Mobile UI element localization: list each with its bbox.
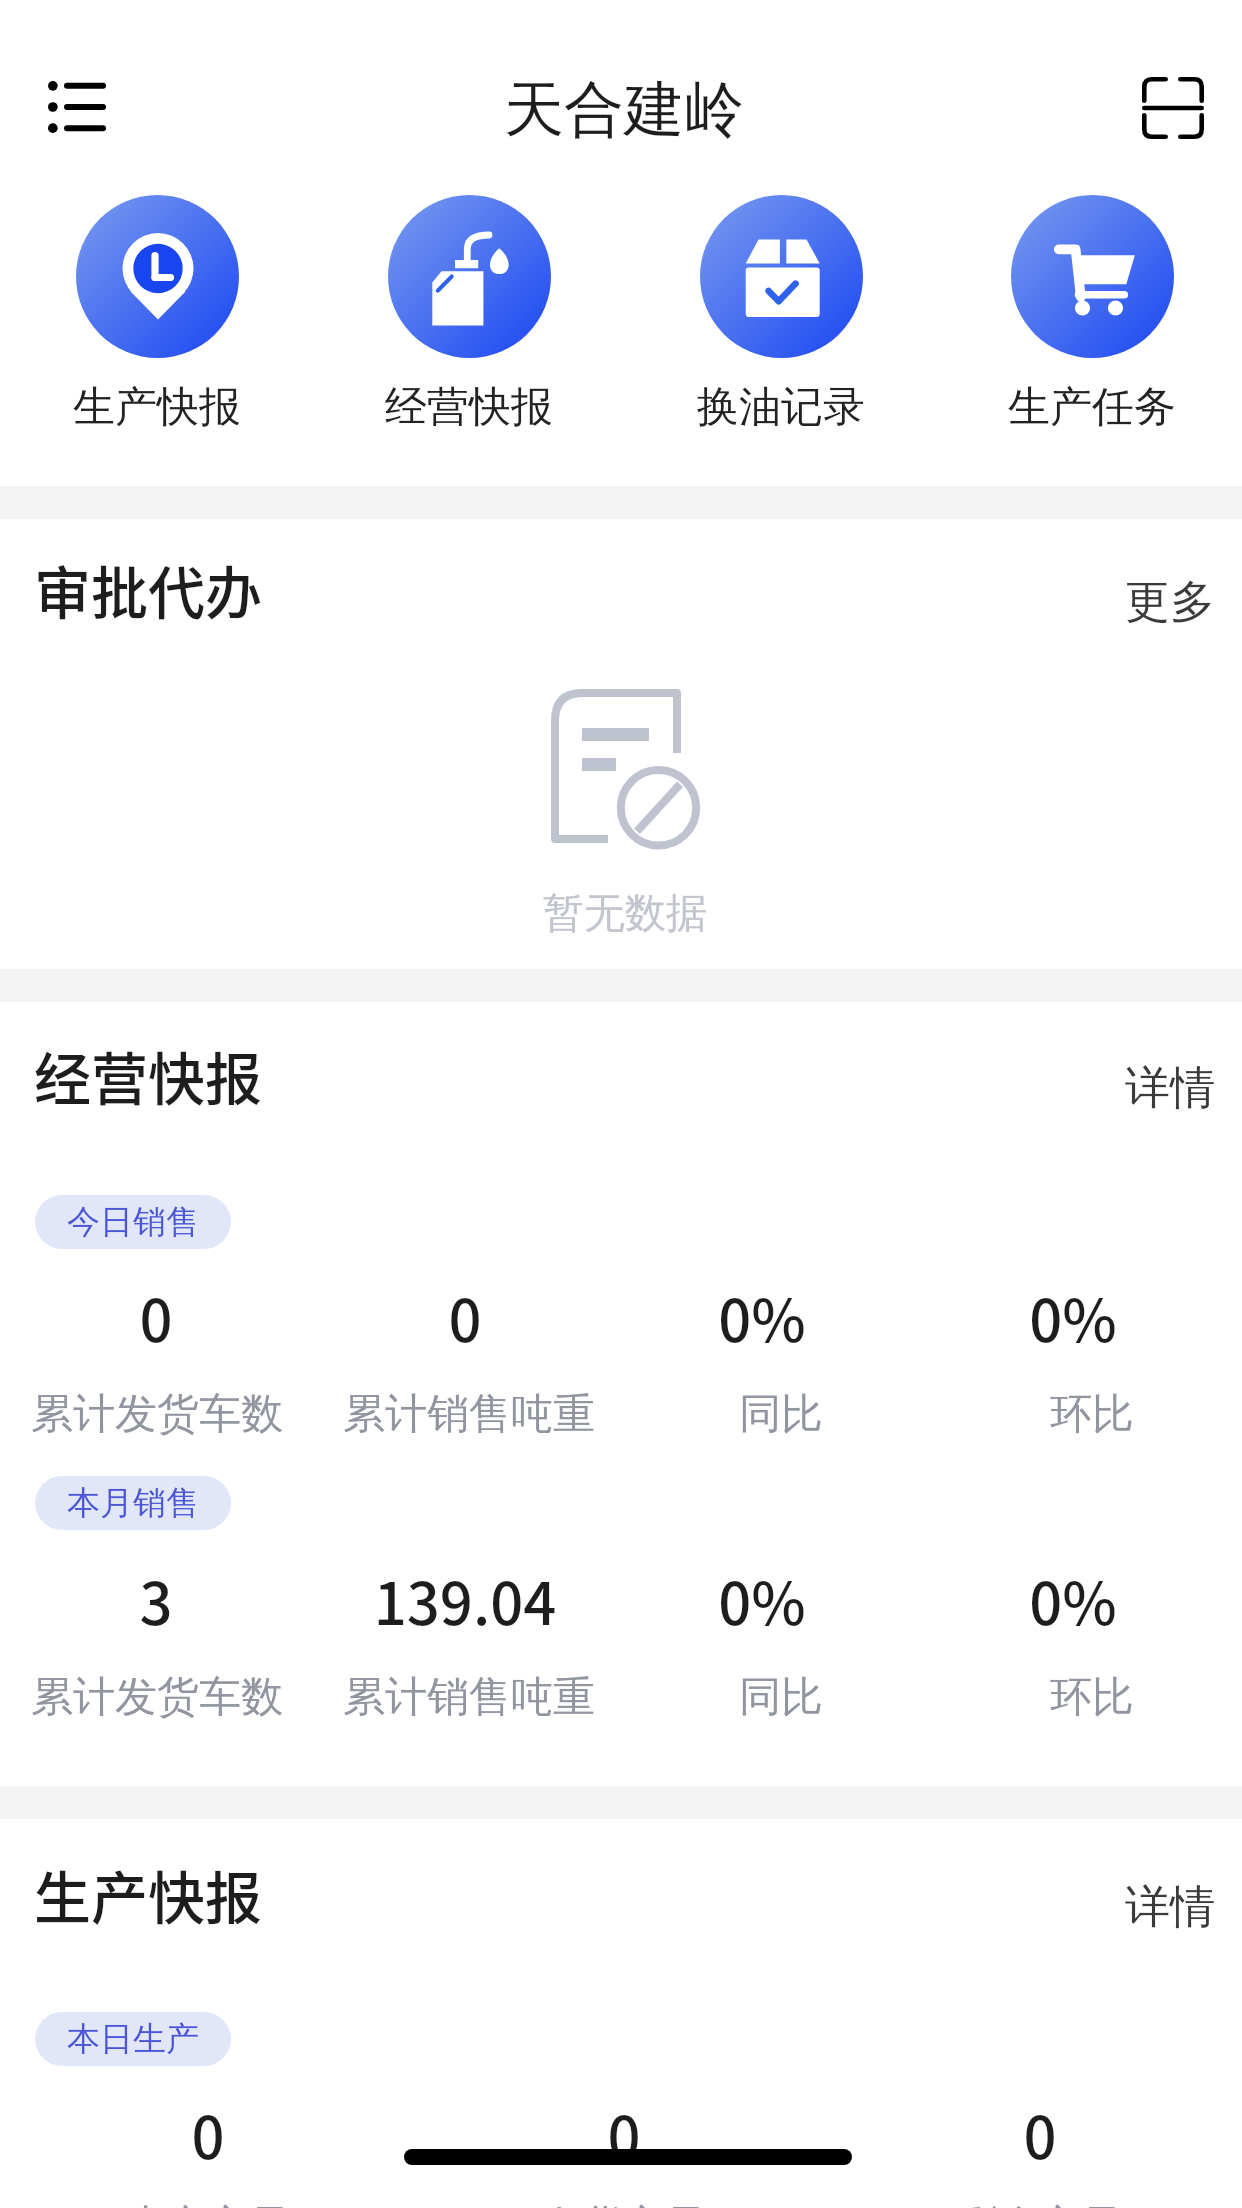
staticText: 3 — [1, 1558, 311, 1642]
staticText: 天合建岭 — [504, 72, 744, 148]
staticText: 详情 — [1125, 1060, 1215, 1117]
button[interactable]: Scan — [1118, 53, 1228, 163]
staticText: 生产快报 — [2, 381, 312, 434]
button[interactable]: 生产任务 — [937, 180, 1242, 450]
staticText: 审批代办 — [34, 548, 262, 631]
staticText: 生产快报 — [34, 1853, 262, 1936]
button[interactable]: 今日销售 — [35, 1195, 231, 1249]
staticText: 0 — [1, 1275, 311, 1359]
button[interactable]: Menu — [22, 52, 132, 162]
staticText: 本月销售 — [67, 1482, 199, 1524]
button[interactable]: 本月销售 — [35, 1476, 231, 1530]
staticText: 0% — [918, 1275, 1228, 1359]
staticText: 同比 — [626, 1671, 936, 1724]
staticText: 更多 — [1125, 574, 1215, 631]
staticText: 今日销售 — [67, 1201, 199, 1243]
button[interactable]: 生产快报 — [2, 180, 312, 450]
staticText: 累计发货车数 — [2, 1388, 312, 1441]
staticText: 0 — [8, 2092, 408, 2176]
staticText: 发货方量 — [424, 2200, 824, 2208]
staticText: 0 — [840, 2092, 1240, 2176]
staticText: 累计销售吨重 — [314, 1671, 624, 1724]
button[interactable]: 经营快报 — [314, 180, 624, 450]
button[interactable]: 本日生产 — [35, 2012, 231, 2066]
staticText: 139.04 — [310, 1558, 620, 1642]
staticText: 剩余方量 — [840, 2200, 1240, 2208]
staticText: 0 — [310, 1275, 620, 1359]
staticText: 换油记录 — [626, 381, 936, 434]
staticText: 经营快报 — [314, 381, 624, 434]
staticText: 0% — [607, 1275, 917, 1359]
staticText: 0% — [918, 1558, 1228, 1642]
staticText: 经营快报 — [34, 1034, 262, 1117]
staticText: 生产任务 — [937, 381, 1242, 434]
staticText: 生产方量 — [8, 2200, 408, 2208]
staticText: 本日生产 — [67, 2018, 199, 2060]
staticText: 累计发货车数 — [2, 1671, 312, 1724]
staticText: 暂无数据 — [4, 888, 1242, 940]
staticText: 0 — [424, 2092, 824, 2176]
button[interactable]: 换油记录 — [626, 180, 936, 450]
button[interactable]: 更多 — [1095, 567, 1215, 637]
staticText: 环比 — [937, 1388, 1242, 1441]
button[interactable]: 详情 — [1095, 1053, 1215, 1123]
staticText: 详情 — [1125, 1879, 1215, 1936]
staticText: 同比 — [626, 1388, 936, 1441]
staticText: 0% — [607, 1558, 917, 1642]
staticText: 累计销售吨重 — [314, 1388, 624, 1441]
button[interactable]: 详情 — [1095, 1872, 1215, 1942]
staticText: 环比 — [937, 1671, 1242, 1724]
